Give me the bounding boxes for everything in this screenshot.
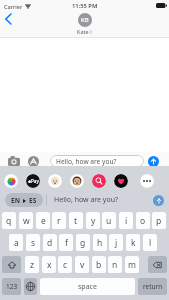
staticText: EN	[11, 196, 20, 205]
button[interactable]: h	[93, 234, 107, 251]
staticText: r	[57, 215, 61, 227]
button[interactable]: w	[19, 212, 33, 229]
button[interactable]: Backspace	[148, 256, 167, 273]
staticText: e	[41, 215, 46, 227]
staticText: space	[78, 282, 97, 292]
staticText: z	[30, 259, 34, 271]
button[interactable]: m	[125, 256, 139, 273]
staticText: p	[156, 215, 162, 227]
staticText: y	[91, 215, 96, 227]
staticText: d	[47, 237, 53, 249]
button[interactable]: Use suggestion	[153, 195, 164, 206]
button[interactable]: KB	[77, 13, 92, 35]
staticText: Carrier	[4, 3, 23, 10]
staticText: u	[106, 215, 112, 227]
staticText: f	[65, 237, 68, 249]
button[interactable]: p	[152, 212, 166, 229]
button[interactable]: i	[119, 212, 133, 229]
staticText: k	[131, 237, 136, 249]
staticText: l	[149, 237, 152, 249]
button[interactable]: Digital Touch	[114, 174, 128, 188]
button[interactable]: Back	[0, 11, 16, 27]
button[interactable]: r	[52, 212, 66, 229]
button[interactable]: o	[136, 212, 150, 229]
button[interactable]: Emoji keyboard	[24, 278, 37, 295]
button[interactable]: Shift	[2, 256, 21, 273]
staticText: c	[63, 259, 68, 271]
button[interactable]: e	[36, 212, 50, 229]
button[interactable]: More	[140, 174, 154, 188]
button[interactable]: Numbers	[2, 278, 21, 295]
button[interactable]: c	[58, 256, 72, 273]
button[interactable]: q	[2, 212, 16, 229]
button[interactable]: l	[143, 234, 157, 251]
staticText: n	[112, 259, 118, 271]
button[interactable]: space	[40, 278, 135, 295]
staticText: return	[143, 282, 163, 291]
button[interactable]: Photos	[4, 174, 18, 188]
button[interactable]: return	[138, 278, 167, 295]
button[interactable]: n	[108, 256, 122, 273]
staticText: Pay	[31, 178, 39, 184]
staticText: Kate	[77, 28, 89, 35]
staticText: Hello, how are you?	[56, 157, 117, 166]
button[interactable]: App Store	[24, 152, 42, 170]
button[interactable]: Memoji	[48, 174, 62, 188]
staticText: a	[14, 237, 19, 249]
button[interactable]: v	[75, 256, 89, 273]
staticText: 123	[6, 282, 18, 291]
button[interactable]: u	[102, 212, 116, 229]
button[interactable]: f	[59, 234, 73, 251]
staticText: 11:55 PM	[72, 2, 98, 10]
button[interactable]: s	[26, 234, 40, 251]
button[interactable]: y	[86, 212, 100, 229]
button[interactable]: b	[92, 256, 106, 273]
button[interactable]: j	[109, 234, 123, 251]
button[interactable]: z	[25, 256, 39, 273]
staticText: q	[6, 215, 12, 227]
staticText: h	[97, 237, 103, 249]
staticText: i	[125, 215, 128, 227]
button[interactable]: Images	[92, 174, 106, 188]
staticText: o	[140, 215, 146, 227]
button[interactable]: Apple Pay	[26, 174, 40, 188]
staticText: j	[115, 237, 118, 249]
button[interactable]: Send	[148, 156, 159, 167]
staticText: b	[96, 259, 102, 271]
staticText: w	[23, 215, 30, 227]
staticText: v	[80, 259, 85, 271]
button[interactable]: EN	[5, 193, 43, 207]
button[interactable]: a	[9, 234, 23, 251]
staticText: m	[128, 259, 136, 271]
staticText: KB	[81, 16, 89, 24]
button[interactable]: d	[43, 234, 57, 251]
button[interactable]: g	[76, 234, 90, 251]
staticText: t	[74, 215, 78, 227]
staticText: x	[47, 259, 52, 271]
button[interactable]: x	[42, 256, 56, 273]
button[interactable]: Memoji	[70, 174, 84, 188]
staticText: Hello, how are you?	[54, 195, 119, 205]
staticText: ES	[29, 196, 37, 205]
button[interactable]: k	[126, 234, 140, 251]
button[interactable]: t	[69, 212, 83, 229]
staticText: s	[31, 237, 36, 249]
button[interactable]: Hello, how are you?	[50, 192, 150, 207]
staticText: g	[80, 237, 86, 249]
button[interactable]: Hello, how are you?	[50, 155, 144, 167]
button[interactable]: Camera	[5, 152, 23, 170]
